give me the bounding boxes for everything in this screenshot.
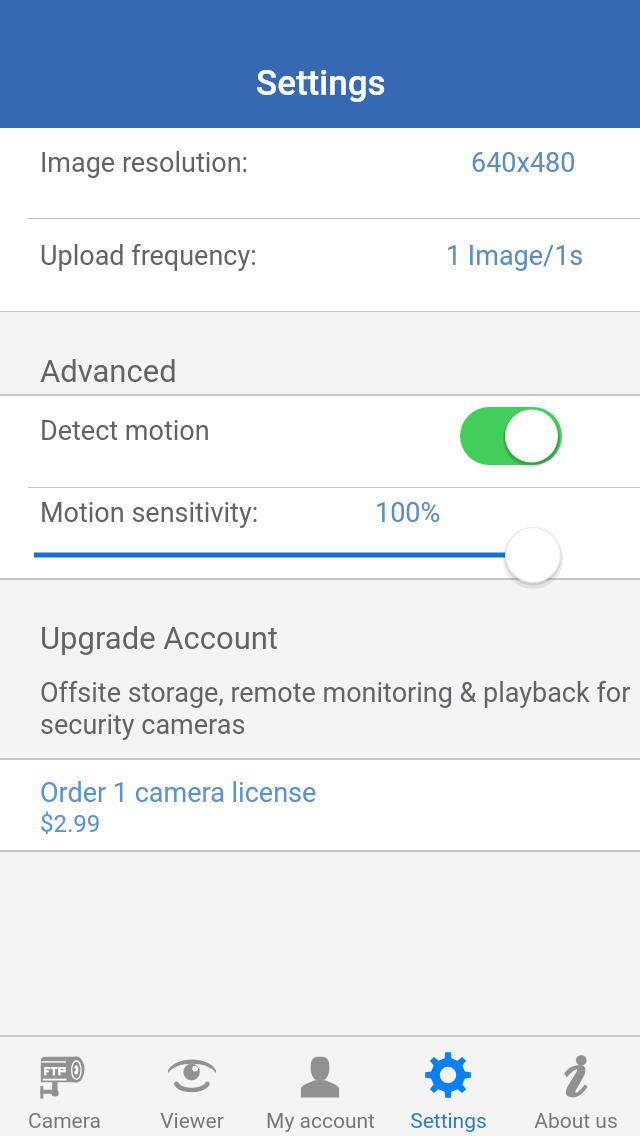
staticText: Camera	[28, 1109, 101, 1134]
staticText: Settings	[256, 63, 386, 104]
staticText: 1 Image/1s	[446, 240, 584, 272]
button[interactable]: Detect motion toggle	[460, 407, 562, 465]
button[interactable]: Image resolution:	[0, 128, 640, 218]
staticText: Detect motion	[40, 415, 210, 447]
button[interactable]: Order 1 camera license	[0, 760, 640, 850]
staticText: Advanced	[40, 353, 177, 389]
button[interactable]: Settings	[384, 1037, 512, 1136]
staticText: $2.99	[40, 810, 101, 838]
staticText: Upgrade Account	[40, 620, 278, 656]
staticText: My account	[266, 1109, 375, 1134]
staticText: 100%	[375, 497, 441, 529]
button[interactable]: About us	[512, 1037, 640, 1136]
staticText: Motion sensitivity:	[40, 497, 259, 529]
staticText: 640x480	[471, 147, 576, 179]
staticText: Viewer	[160, 1109, 224, 1134]
staticText: security cameras	[40, 709, 246, 741]
button[interactable]: Camera	[0, 1037, 128, 1136]
staticText: Offsite storage, remote monitoring & pla…	[40, 677, 631, 709]
button[interactable]: Motion sensitivity:	[0, 488, 640, 578]
button[interactable]: Detect motion	[0, 396, 640, 487]
staticText: Order 1 camera license	[40, 777, 317, 809]
staticText: About us	[534, 1109, 618, 1134]
button[interactable]: My account	[256, 1037, 384, 1136]
staticText: Upload frequency:	[40, 240, 257, 272]
staticText: Image resolution:	[40, 147, 249, 179]
staticText: Settings	[410, 1109, 487, 1134]
button[interactable]: Upload frequency:	[0, 219, 640, 311]
button[interactable]: Viewer	[128, 1037, 256, 1136]
